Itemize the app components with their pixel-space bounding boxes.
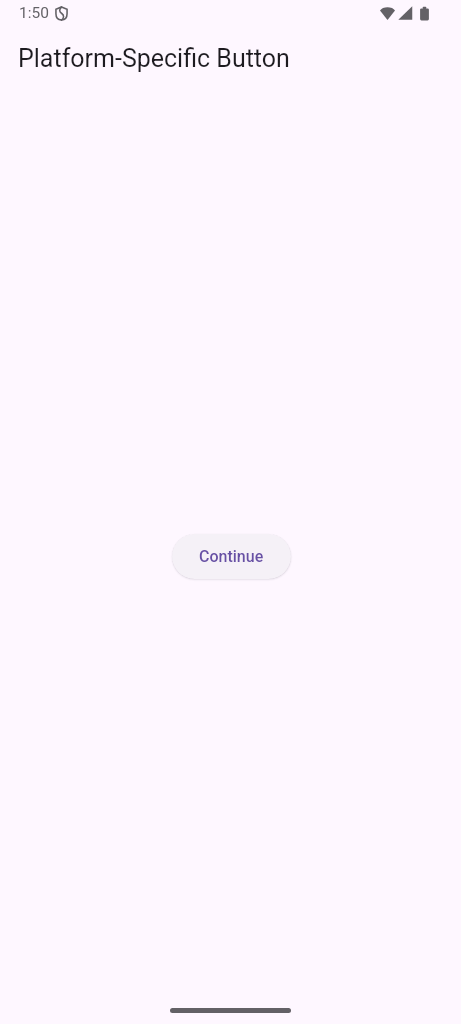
other: Battery full — [419, 6, 430, 21]
staticText: Continue — [199, 547, 264, 566]
other: VPN active — [55, 6, 68, 21]
other: Wi-Fi — [380, 6, 395, 20]
button[interactable]: Continue — [172, 534, 291, 579]
other: Mobile signal — [398, 6, 413, 20]
staticText: Platform-Specific Button — [18, 44, 290, 73]
staticText: 1:50 — [19, 4, 49, 22]
